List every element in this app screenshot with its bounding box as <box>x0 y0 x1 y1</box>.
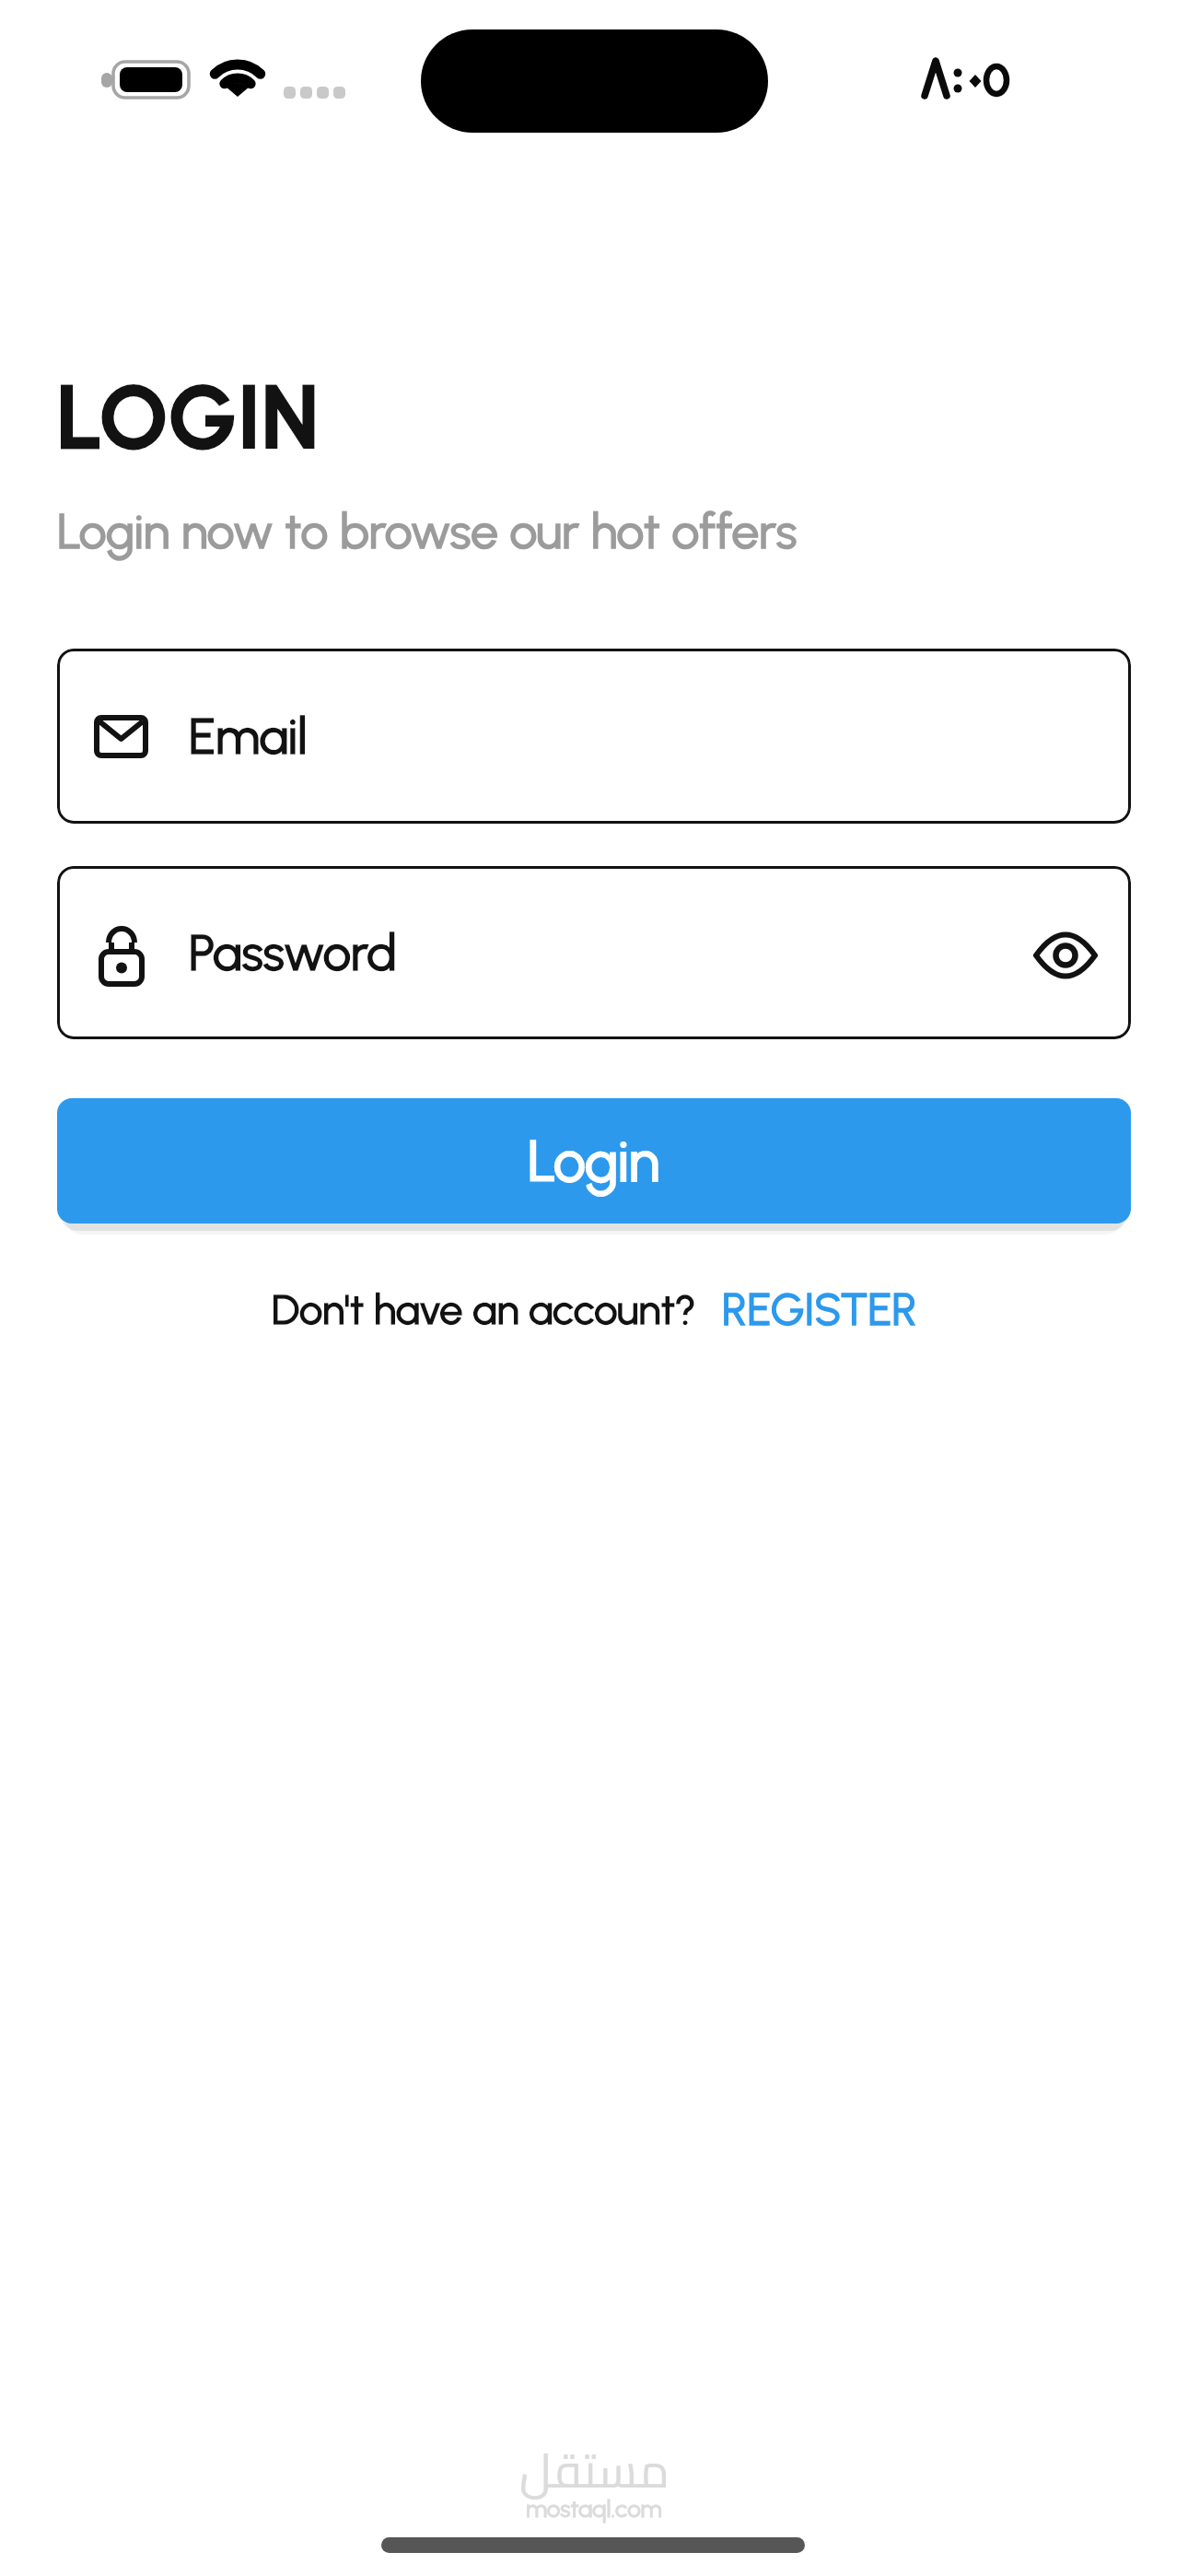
staticText: Login now to browse our hot offers <box>57 502 798 561</box>
button[interactable]: Password <box>57 866 1131 1039</box>
button[interactable]: REGISTER <box>722 1282 917 1336</box>
button[interactable] <box>1015 902 1116 1003</box>
staticText: mostaql.com <box>526 2494 662 2523</box>
button[interactable]: Email <box>57 649 1131 824</box>
staticText: LOGIN <box>59 367 322 466</box>
staticText: Email <box>189 707 308 767</box>
staticText: مستقل <box>519 2425 670 2514</box>
staticText: Don't have an account? <box>272 1284 696 1334</box>
button[interactable]: Login <box>57 1098 1131 1224</box>
staticText: Password <box>189 923 397 983</box>
staticText: LOGIN <box>59 367 322 466</box>
staticText: Login <box>528 1127 660 1195</box>
staticText: REGISTER <box>722 1282 917 1336</box>
